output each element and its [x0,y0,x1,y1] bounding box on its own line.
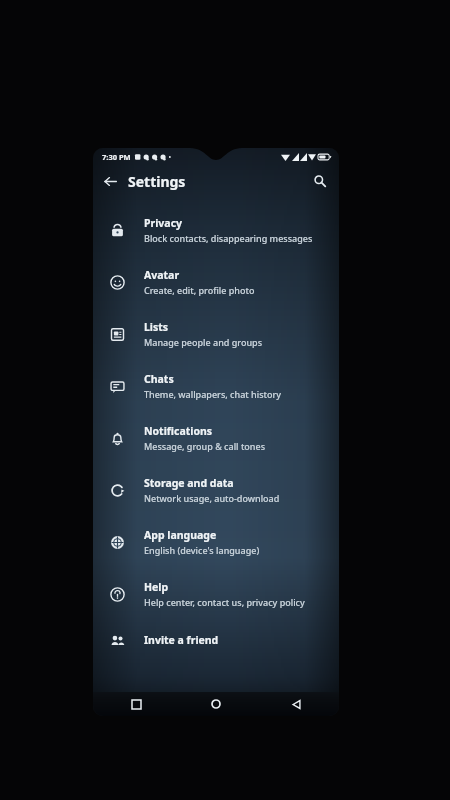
staticText: 7:30 PM [102,152,131,162]
button[interactable]: Privacy [93,204,339,256]
button[interactable]: Chats [93,360,339,412]
staticText: Privacy [144,216,183,230]
staticText: Manage people and groups [144,336,263,348]
staticText: Settings [128,172,186,191]
staticText: Block contacts, disappearing messages [144,232,313,244]
staticText: Network usage, auto-download [144,492,280,504]
staticText: Lists [144,320,169,334]
staticText: Message, group & call tones [144,440,266,452]
button[interactable]: Invite a friend [93,620,339,660]
staticText: Chats [144,372,174,386]
button[interactable]: Recents [125,693,147,715]
button[interactable]: Notifications [93,412,339,464]
button[interactable]: Help [93,568,339,620]
staticText: Help [144,580,169,594]
button[interactable]: Storage and data [93,464,339,516]
staticText: Help center, contact us, privacy policy [144,596,305,608]
staticText: Storage and data [144,476,234,490]
staticText: English (device's language) [144,544,260,556]
staticText: Create, edit, profile photo [144,284,255,296]
button[interactable]: Avatar [93,256,339,308]
staticText: Notifications [144,424,213,438]
staticText: App language [144,528,217,542]
button[interactable]: App language [93,516,339,568]
button[interactable]: Search [307,168,333,194]
button[interactable]: Home [205,693,227,715]
staticText: Avatar [144,268,180,282]
staticText: Invite a friend [144,633,219,647]
button[interactable]: Back [97,168,123,194]
staticText: Theme, wallpapers, chat history [144,388,282,400]
button[interactable]: Back [285,693,307,715]
button[interactable]: Lists [93,308,339,360]
